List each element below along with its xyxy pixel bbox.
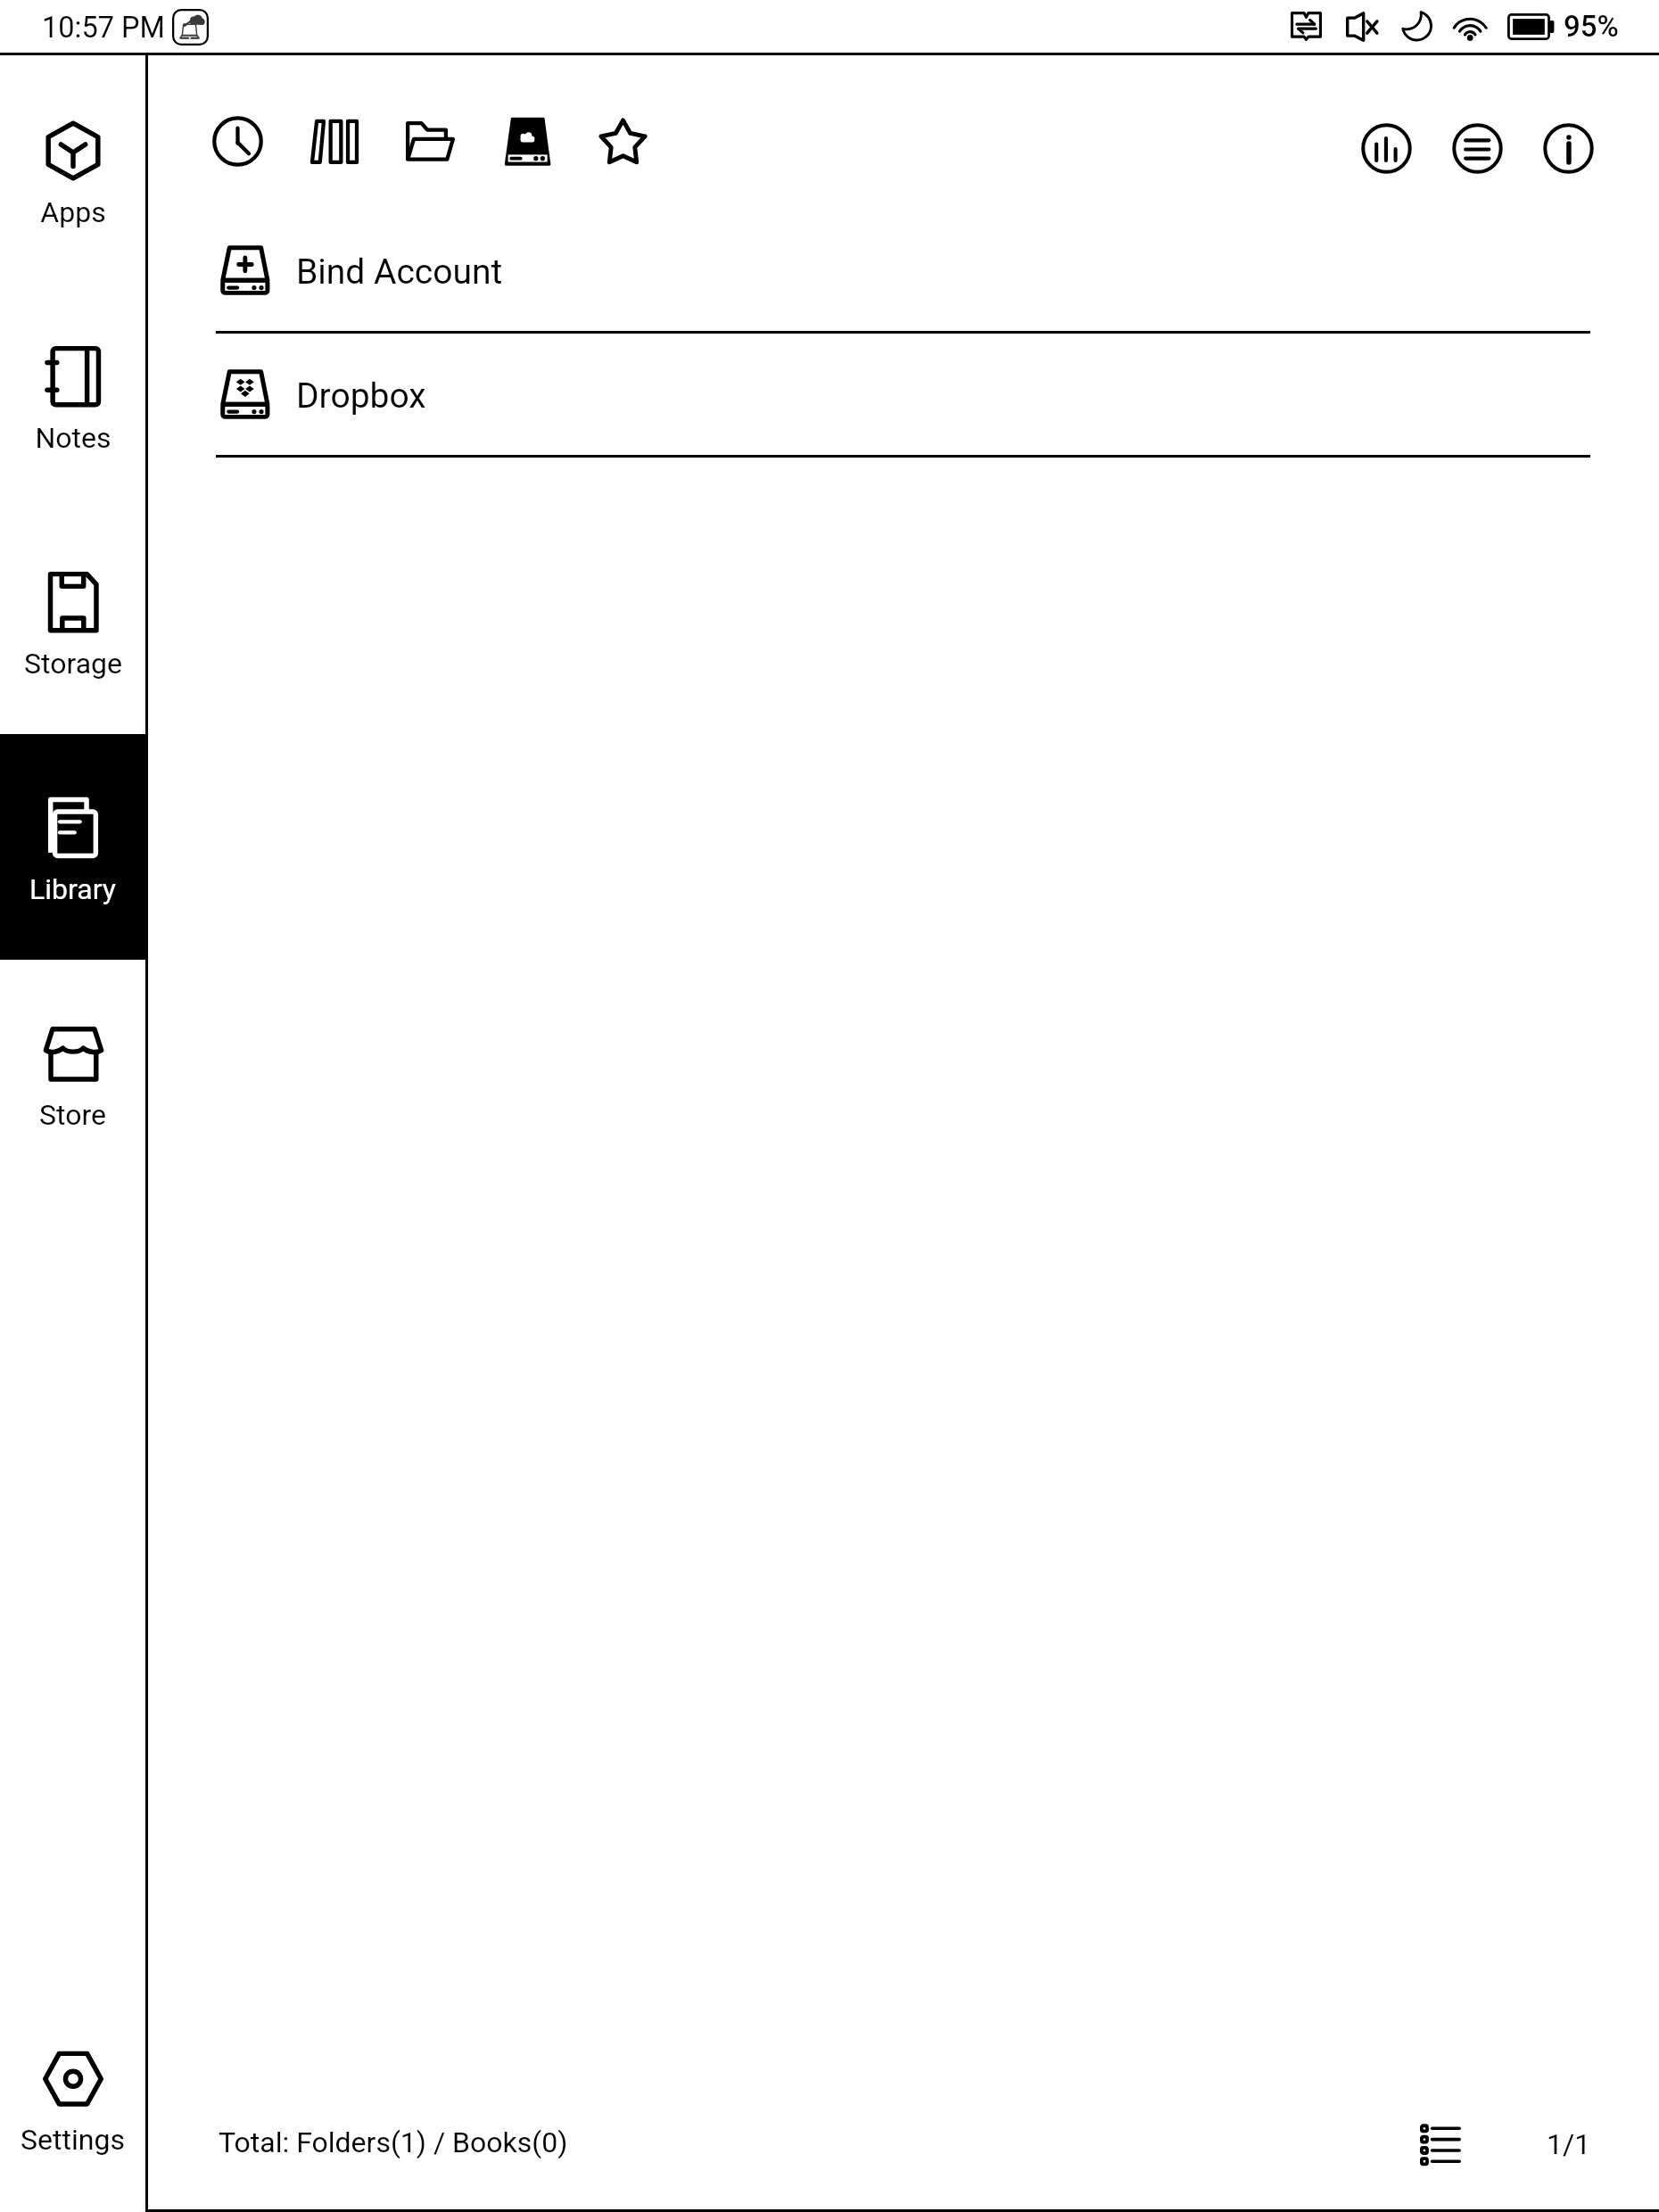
button[interactable]: Bind Account <box>216 210 1590 331</box>
staticText: Notes <box>35 421 111 455</box>
button[interactable]: Dropbox <box>216 334 1590 455</box>
button[interactable]: Library <box>0 734 145 960</box>
button[interactable]: Settings <box>0 1985 145 2210</box>
staticText: Settings <box>21 2123 125 2157</box>
staticText: 95% <box>1564 9 1619 44</box>
button[interactable]: Apps <box>0 57 145 283</box>
staticText: Store <box>39 1098 106 1132</box>
staticText: Dropbox <box>296 376 426 417</box>
staticText: Apps <box>40 195 106 229</box>
button[interactable]: Folders <box>405 116 456 167</box>
staticText: Total: Folders(1) / Books(0) <box>219 2125 568 2159</box>
button[interactable]: Recent <box>212 116 263 167</box>
staticText: Library <box>29 872 116 906</box>
button[interactable]: Storage <box>0 508 145 734</box>
button[interactable]: Menu <box>1452 123 1503 174</box>
staticText: Bind Account <box>296 252 503 293</box>
staticText: 10:57 PM <box>42 11 165 45</box>
button[interactable]: Notes <box>0 283 145 508</box>
button[interactable]: Info <box>1543 123 1594 174</box>
button[interactable]: Library <box>308 116 359 167</box>
staticText: 1/1 <box>1547 2127 1591 2161</box>
staticText: Storage <box>24 647 122 681</box>
button[interactable]: Cloud Storage <box>500 116 551 167</box>
button[interactable]: Favorites <box>598 116 648 167</box>
button[interactable]: Store <box>0 960 145 1185</box>
button[interactable]: Statistics <box>1361 123 1412 174</box>
button[interactable]: List view <box>1420 2124 1461 2166</box>
